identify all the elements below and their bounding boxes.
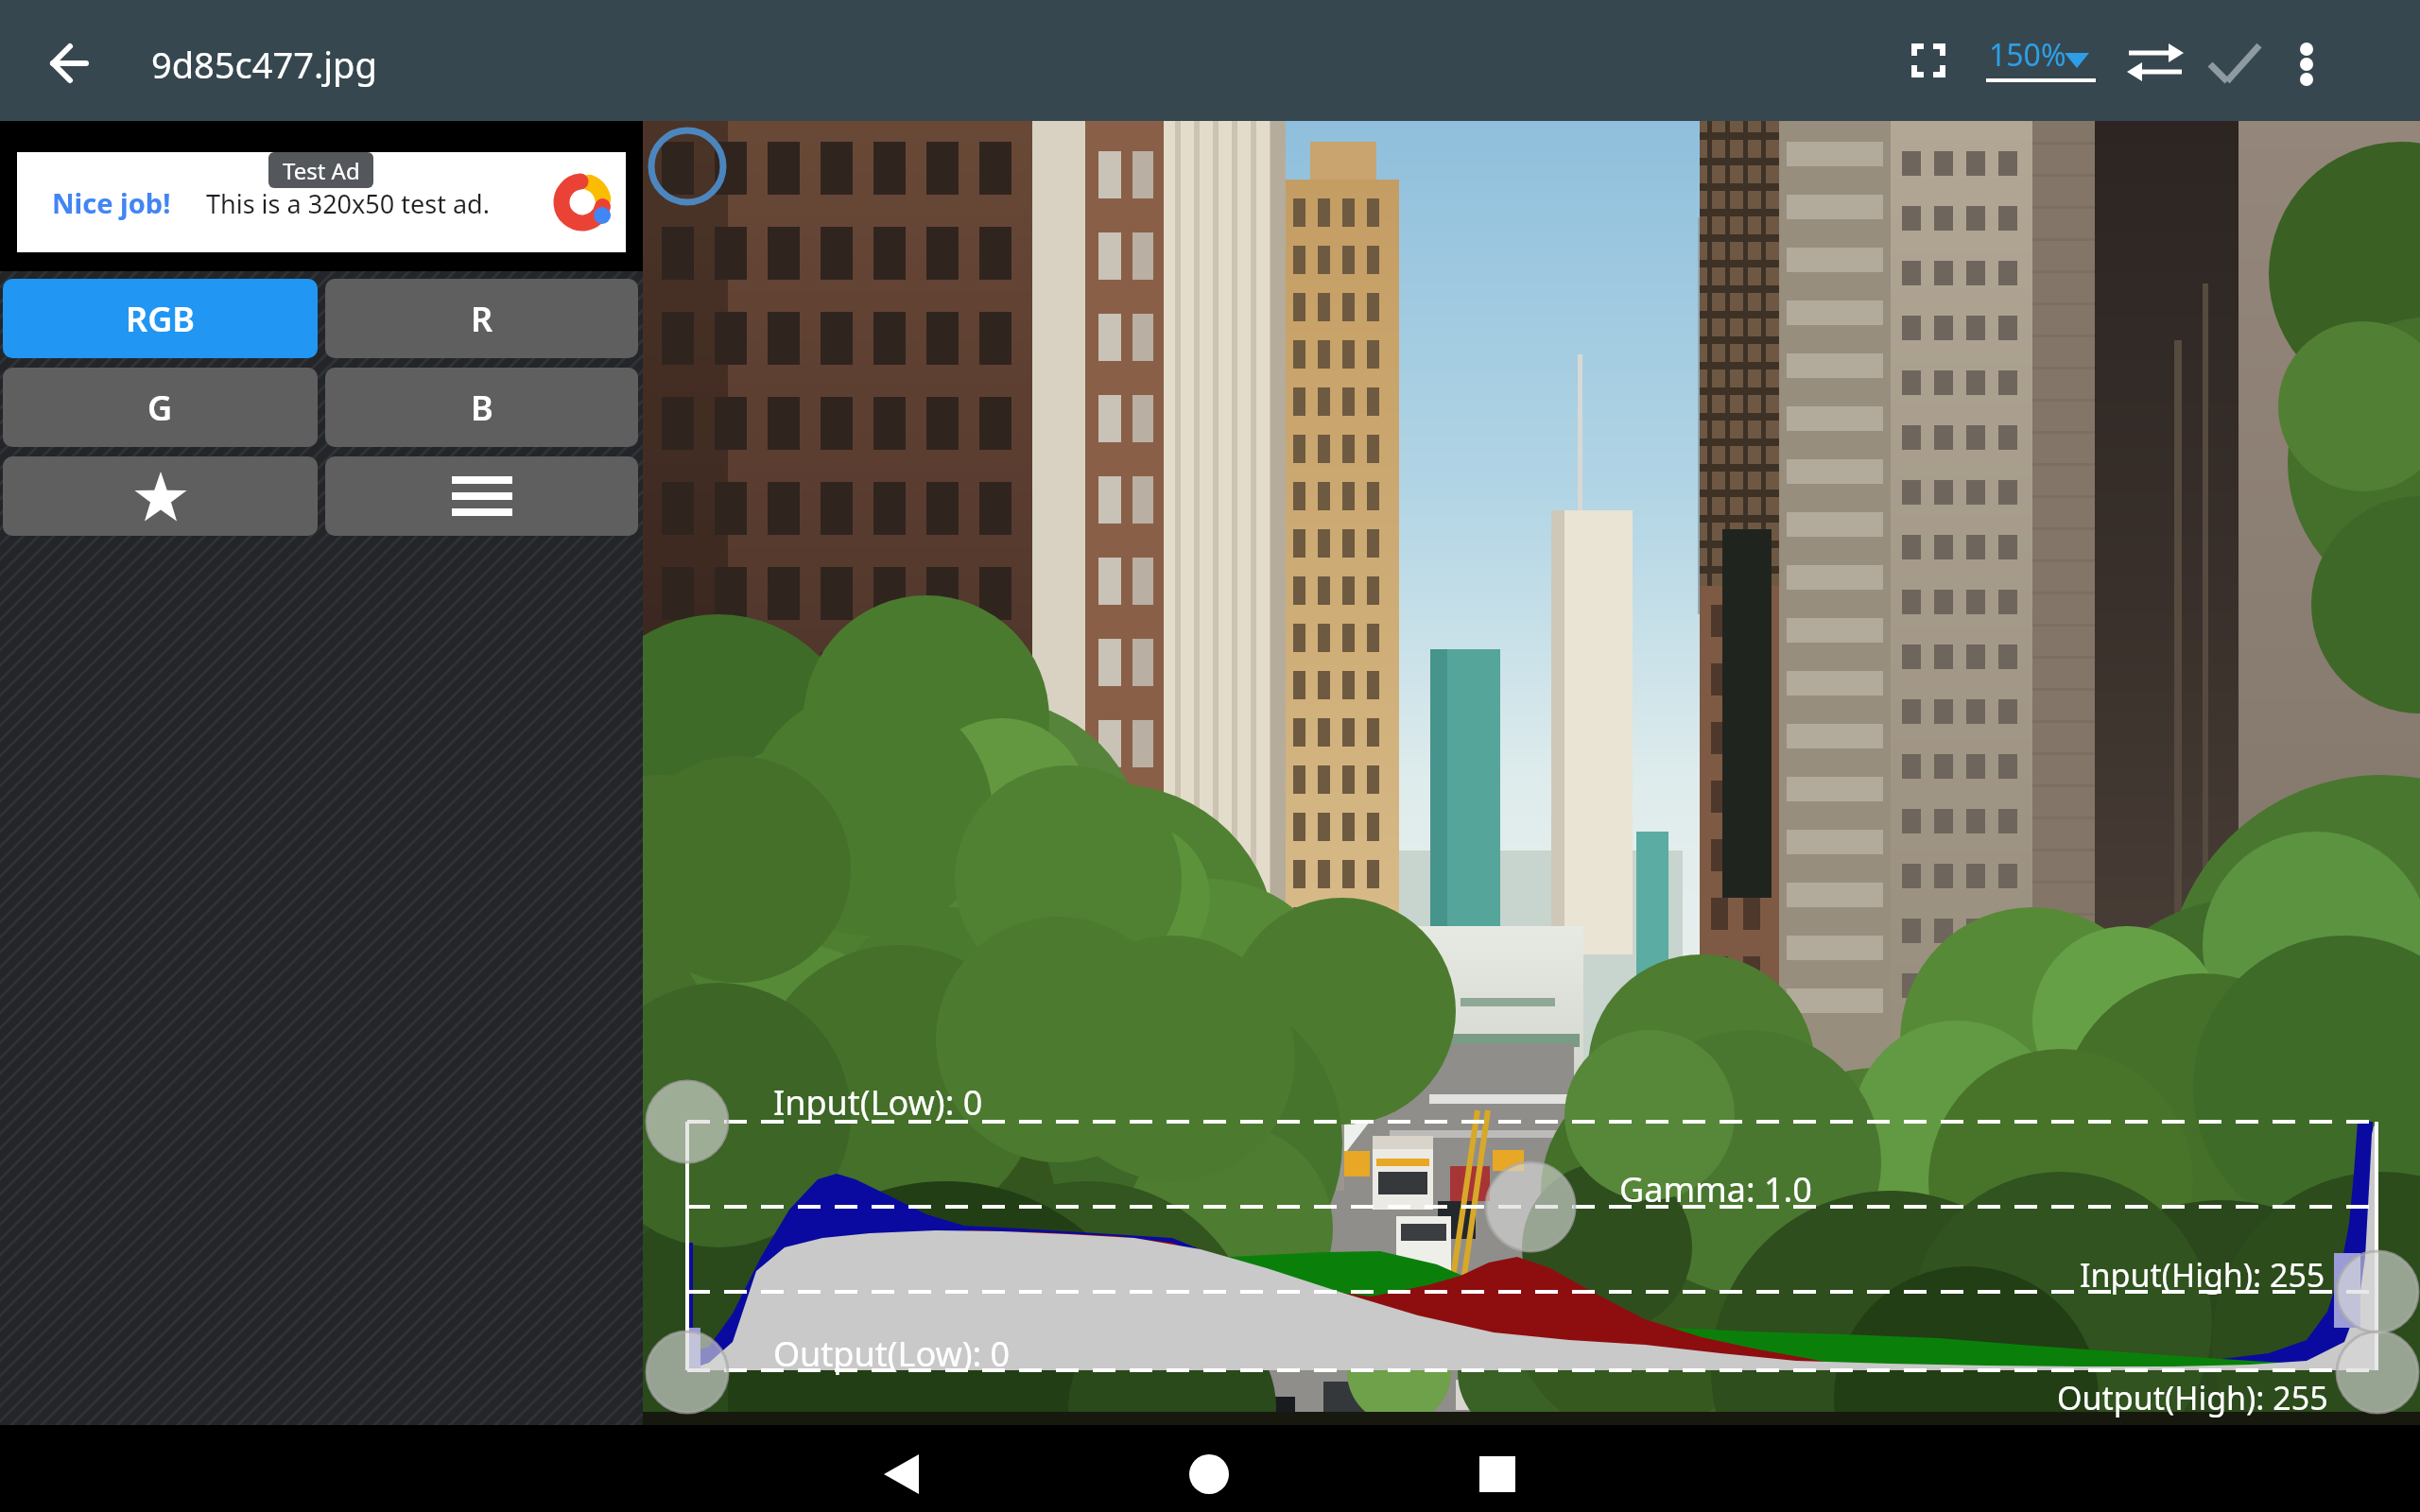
button[interactable]: RGB (3, 279, 318, 358)
button[interactable] (2203, 28, 2269, 89)
staticText: Nice job! (52, 184, 171, 221)
button[interactable] (1460, 1431, 1535, 1506)
staticText: Gamma: 1.0 (1619, 1166, 1812, 1212)
button[interactable]: G (3, 368, 318, 447)
staticText: G (147, 385, 173, 431)
staticText: 9d85c477.jpg (151, 40, 377, 89)
button[interactable] (325, 456, 638, 536)
button[interactable] (863, 1431, 939, 1506)
staticText: Output(Low): 0 (773, 1331, 1011, 1377)
staticText: Test Ad (283, 155, 360, 186)
staticText: Input(Low): 0 (773, 1079, 983, 1125)
button[interactable] (3, 456, 318, 536)
staticText: RGB (126, 296, 196, 342)
button[interactable] (1898, 30, 1959, 91)
button[interactable]: R (325, 279, 638, 358)
staticText: 150% (1989, 34, 2066, 76)
button[interactable] (1171, 1431, 1247, 1506)
staticText: B (471, 385, 493, 431)
staticText: This is a 320x50 test ad. (206, 186, 490, 221)
button[interactable] (36, 30, 102, 96)
button[interactable]: 150% (1981, 28, 2099, 89)
button[interactable] (2278, 28, 2335, 89)
button[interactable]: B (325, 368, 638, 447)
button[interactable]: Nice job! (17, 152, 626, 252)
staticText: R (471, 296, 493, 342)
staticText: Input(High): 255 (2080, 1253, 2325, 1297)
button[interactable] (2117, 28, 2193, 89)
staticText: Output(High): 255 (2057, 1376, 2328, 1419)
